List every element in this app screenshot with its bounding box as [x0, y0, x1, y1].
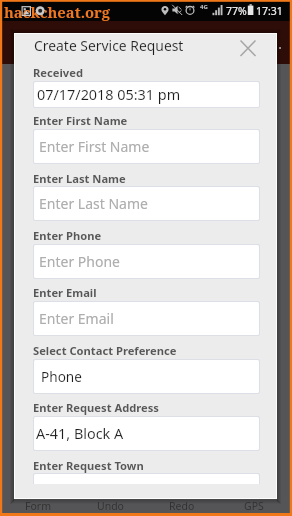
staticText: Enter Request Town	[33, 458, 144, 473]
button[interactable]: Form	[2, 499, 74, 513]
button[interactable]: 07/17/2018 05:31 pm	[34, 82, 259, 107]
button[interactable]: Undo	[74, 499, 146, 513]
staticText: Undo	[97, 499, 124, 513]
staticText: Received	[33, 65, 83, 80]
staticText: Enter First Name	[33, 113, 128, 128]
staticText: Enter Last Name	[39, 194, 148, 213]
button[interactable]: Enter Email	[34, 302, 259, 335]
button[interactable]: A-41, Block A	[34, 417, 259, 450]
staticText: Enter First Name	[39, 137, 150, 156]
staticText: Phone	[41, 367, 82, 386]
button[interactable]: Enter Phone	[34, 245, 259, 278]
staticText: Enter Email	[39, 309, 114, 328]
button[interactable]: Close dialog	[235, 38, 261, 64]
staticText: Enter Last Name	[33, 171, 126, 186]
button[interactable]: Redo	[146, 499, 218, 513]
button[interactable]: Enter First Name	[34, 130, 259, 163]
staticText: Form	[25, 499, 51, 513]
staticText: Enter Request Address	[33, 400, 159, 415]
staticText: A-41, Block A	[36, 424, 124, 444]
staticText: hackcheat.org	[4, 2, 111, 22]
staticText: 17:31	[256, 4, 283, 18]
staticText: Enter Phone	[33, 228, 102, 243]
button[interactable]: Enter Last Name	[34, 187, 259, 220]
staticText: Enter Email	[33, 285, 97, 300]
staticText: 07/17/2018 05:31 pm	[37, 85, 181, 105]
staticText: 4G	[200, 3, 208, 11]
staticText: GPS	[244, 499, 264, 513]
button[interactable]: Phone	[34, 360, 259, 393]
staticText: Create Service Request	[34, 36, 184, 55]
staticText: 77%	[226, 4, 247, 18]
staticText: Enter Phone	[39, 252, 120, 271]
staticText: Redo	[169, 499, 195, 513]
staticText: Select Contact Preference	[33, 343, 177, 358]
button[interactable]: GPS	[218, 499, 290, 513]
